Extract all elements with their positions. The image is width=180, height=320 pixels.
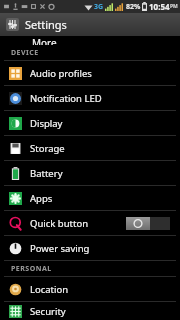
- staticText: More...: [32, 36, 65, 45]
- button[interactable]: Notification LED: [0, 86, 180, 110]
- staticText: Location: [30, 283, 69, 296]
- staticText: 3G: [94, 2, 104, 12]
- button[interactable]: Audio profiles: [0, 61, 180, 85]
- staticText: DEVICE: [11, 48, 39, 58]
- staticText: 10:54: [149, 1, 170, 12]
- staticText: Quick button: [30, 217, 89, 230]
- staticText: Apps: [30, 192, 53, 205]
- staticText: Storage: [30, 142, 65, 155]
- staticText: Notification LED: [30, 92, 102, 105]
- other: Settings icon: [6, 18, 19, 31]
- button[interactable]: Apps: [0, 186, 180, 210]
- button[interactable]: Display: [0, 111, 180, 135]
- staticText: Battery: [30, 167, 63, 180]
- button[interactable]: Settings icon: [0, 13, 180, 36]
- staticText: 82%: [126, 2, 141, 12]
- staticText: Settings: [25, 17, 67, 32]
- button[interactable]: Battery: [0, 161, 180, 185]
- button[interactable]: Security: [0, 302, 180, 320]
- button[interactable]: Power saving: [0, 236, 180, 260]
- staticText: Audio profiles: [30, 67, 92, 80]
- button[interactable]: Location: [0, 277, 180, 301]
- staticText: Display: [30, 117, 63, 130]
- staticText: PERSONAL: [11, 264, 52, 274]
- button[interactable]: Quick button: [0, 211, 180, 235]
- button[interactable]: Storage: [0, 136, 180, 160]
- button[interactable]: Quick button toggle: [126, 217, 170, 230]
- staticText: Power saving: [30, 242, 90, 255]
- staticText: PM: [170, 3, 178, 10]
- staticText: Security: [30, 305, 66, 318]
